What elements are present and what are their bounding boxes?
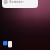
button[interactable] (3, 41, 12, 47)
button[interactable]: Reminder (2, 0, 38, 8)
staticText: Reminder (9, 0, 23, 4)
